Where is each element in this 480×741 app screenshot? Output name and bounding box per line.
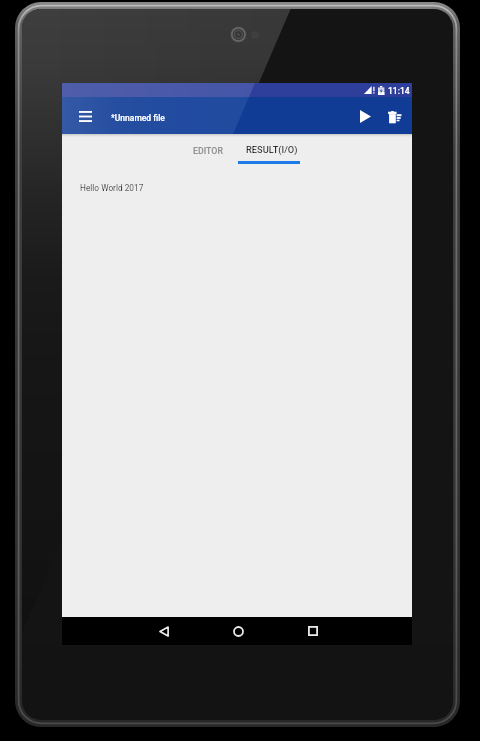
button[interactable]: Recent apps <box>298 617 328 645</box>
staticText: 11:14 <box>388 86 410 96</box>
button[interactable]: Run <box>344 97 386 134</box>
button[interactable]: Home <box>223 617 253 645</box>
staticText: RESULT(I/O) <box>246 144 298 155</box>
button[interactable]: Back <box>149 617 179 645</box>
button[interactable]: EDITOR <box>175 134 241 162</box>
staticText: *Unnamed file <box>111 113 165 123</box>
staticText: Hello World 2017 <box>80 183 144 193</box>
button[interactable]: Open navigation menu <box>63 97 108 134</box>
button[interactable]: Clear output <box>376 97 412 134</box>
staticText: EDITOR <box>193 146 223 156</box>
button[interactable]: RESULT(I/O) <box>238 134 306 162</box>
